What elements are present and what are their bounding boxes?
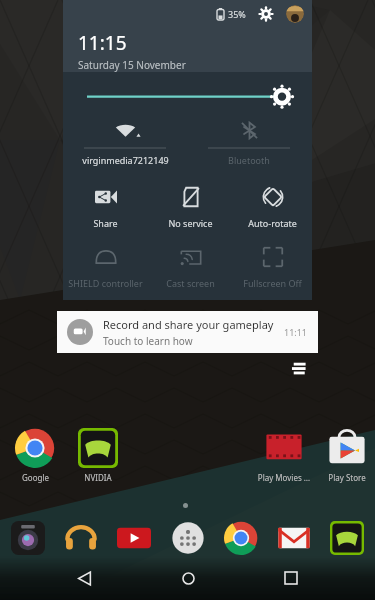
button[interactable]: NVIDIA (71, 428, 125, 483)
staticText: Touch to learn how (103, 334, 193, 348)
button[interactable]: SHIELD controller (63, 242, 148, 293)
button[interactable]: Play Movies &.. (257, 428, 311, 483)
button[interactable]: Clear all notifications (288, 357, 310, 379)
button[interactable]: User profile (286, 5, 304, 23)
button[interactable]: Home (168, 558, 208, 598)
button[interactable]: Play Music (59, 516, 103, 560)
staticText: Fullscreen Off (243, 277, 302, 289)
staticText: Share (93, 217, 118, 229)
button[interactable]: YouTube (112, 516, 156, 560)
staticText: 11:15 (78, 30, 127, 56)
staticText: 35% (228, 8, 246, 20)
button[interactable]: Brightness (63, 72, 312, 116)
staticText: SHIELD controller (68, 277, 143, 289)
staticText: Saturday 15 November (78, 58, 186, 72)
button[interactable]: Share (63, 182, 148, 233)
staticText: 11:11 (284, 326, 308, 338)
button[interactable]: Google (8, 428, 62, 483)
staticText: Auto-rotate (248, 217, 297, 229)
staticText: Play Movies &.. (257, 472, 311, 483)
button[interactable]: No service (148, 182, 233, 233)
button[interactable]: Gmail (272, 516, 316, 560)
staticText: Play Store (328, 472, 366, 483)
button[interactable]: Fullscreen Off (233, 242, 312, 293)
button[interactable]: Chrome (219, 516, 263, 560)
staticText: virginmedia7212149 (82, 154, 169, 166)
button[interactable]: Bluetooth (187, 116, 311, 166)
button[interactable]: Play Store (320, 428, 374, 483)
button[interactable]: Settings (258, 6, 274, 22)
button[interactable]: virginmedia7212149 (63, 116, 187, 166)
button[interactable]: Record and share your gameplay (57, 311, 318, 353)
staticText: Cast screen (166, 277, 215, 289)
staticText: Google (22, 472, 49, 483)
staticText: Bluetooth (228, 154, 270, 166)
button[interactable]: Cast screen (148, 242, 233, 293)
button[interactable]: NVIDIA (325, 516, 369, 560)
staticText: Record and share your gameplay (103, 317, 274, 332)
staticText: No service (168, 217, 213, 229)
staticText: NVIDIA (84, 472, 112, 483)
button[interactable]: Camera (6, 516, 50, 560)
button[interactable]: Back (64, 558, 104, 598)
button[interactable]: Recent apps (271, 558, 311, 598)
button[interactable]: All apps (166, 516, 210, 560)
button[interactable]: Auto-rotate (233, 182, 312, 233)
